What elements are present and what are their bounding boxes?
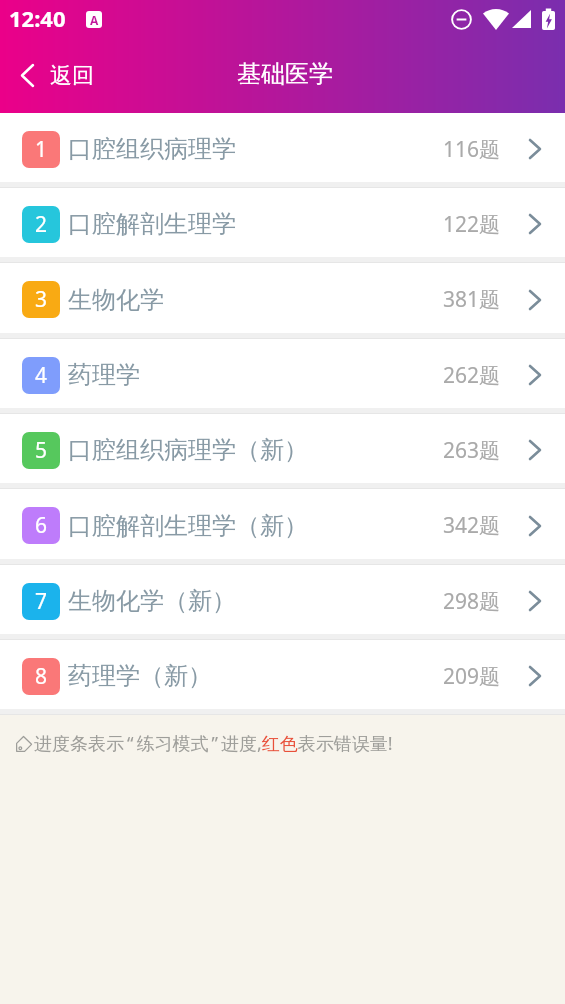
other: Mobile signal — [512, 10, 531, 28]
other: 返回 — [21, 64, 34, 87]
staticText: 3 — [35, 285, 48, 314]
staticText: 1 — [35, 135, 48, 164]
staticText: 342题 — [443, 511, 501, 540]
staticText: 12:40 — [9, 3, 66, 33]
other: Battery charging — [542, 8, 556, 30]
button[interactable]: 2 — [0, 188, 565, 257]
button[interactable]: 1 — [0, 113, 565, 182]
staticText: 口腔解剖生理学（新） — [68, 511, 308, 541]
button[interactable]: 返回 — [0, 38, 108, 113]
staticText: 8 — [35, 662, 48, 691]
other: Do not disturb — [451, 9, 472, 30]
staticText: 口腔解剖生理学 — [68, 209, 236, 239]
staticText: 4 — [35, 361, 48, 390]
staticText: 298题 — [443, 587, 501, 616]
staticText: 口腔组织病理学 — [68, 134, 236, 164]
staticText: 5 — [35, 436, 48, 465]
button[interactable]: 4 — [0, 339, 565, 408]
staticText: 381题 — [443, 285, 501, 314]
other: 提示 — [16, 736, 32, 752]
staticText: 262题 — [443, 361, 501, 390]
staticText: 6 — [35, 511, 48, 540]
other: Wi-Fi — [483, 9, 509, 30]
staticText: 生物化学（新） — [68, 586, 236, 616]
staticText: 116题 — [443, 135, 501, 164]
staticText: 药理学 — [68, 360, 140, 390]
staticText: 263题 — [443, 436, 501, 465]
staticText: 药理学（新） — [68, 661, 212, 691]
staticText: 7 — [35, 587, 48, 616]
staticText: 2 — [35, 210, 48, 239]
button[interactable]: 5 — [0, 414, 565, 483]
staticText: 生物化学 — [68, 285, 164, 315]
staticText: 209题 — [443, 662, 501, 691]
staticText: 进度条表示 “ 练习模式 ” 进度,红色表示错误量! — [34, 731, 393, 756]
staticText: 122题 — [443, 210, 501, 239]
staticText: 口腔组织病理学（新） — [68, 435, 308, 465]
button[interactable]: 6 — [0, 489, 565, 559]
staticText: 返回 — [50, 62, 94, 90]
button[interactable]: 7 — [0, 565, 565, 634]
button[interactable]: 8 — [0, 640, 565, 709]
button[interactable]: 3 — [0, 263, 565, 333]
staticText: A — [90, 12, 99, 28]
staticText: 基础医学 — [237, 59, 333, 89]
